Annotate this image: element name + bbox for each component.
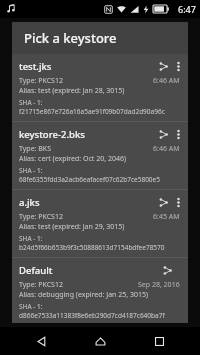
button[interactable]: a.jks: [12, 190, 188, 257]
button[interactable]: More options: [172, 59, 184, 74]
staticText: SHA - 1:: [19, 234, 43, 243]
staticText: d866e7533a11383f8e6eb290d7cd4187c640ba7f: [19, 311, 165, 318]
staticText: Pick a keystore: [24, 29, 117, 47]
staticText: 6:46 AM: [153, 76, 180, 86]
staticText: Type: PKCS12: [19, 212, 153, 222]
staticText: Alias: debugging (expired: Jan 25, 3015): [19, 290, 149, 300]
button[interactable]: Recent apps: [141, 327, 177, 355]
staticText: SHA - 1:: [19, 98, 43, 107]
staticText: Type: PKCS12: [19, 76, 153, 86]
staticText: Sep 28, 2016: [138, 280, 180, 290]
button[interactable]: More options: [172, 195, 184, 210]
staticText: test.jks: [19, 60, 154, 73]
staticText: Default: [19, 264, 158, 277]
staticText: 68fe6355fdd3a2acb6eafacef07c62b7ce5800e5: [19, 175, 160, 184]
button[interactable]: Back: [23, 327, 59, 355]
staticText: keystore-2.bks: [19, 128, 154, 141]
button[interactable]: Share: [154, 195, 172, 210]
button[interactable]: test.jks: [12, 54, 188, 121]
staticText: Alias: test (expired: Jan 28, 3015): [19, 86, 125, 96]
staticText: SHA - 1:: [19, 302, 43, 311]
button[interactable]: More options: [172, 127, 184, 142]
staticText: Type: BKS: [19, 144, 153, 154]
button[interactable]: Home: [82, 327, 118, 355]
staticText: b24d5f66b653b9f3c50888613d7154bdfee78570: [19, 243, 165, 252]
staticText: 6:47: [178, 3, 196, 15]
staticText: SHA - 1:: [19, 166, 43, 175]
button[interactable]: keystore-2.bks: [12, 122, 188, 189]
staticText: a.jks: [19, 196, 154, 209]
button[interactable]: Default: [12, 258, 188, 323]
button[interactable]: Share: [158, 263, 176, 278]
staticText: Alias: test (expired: Jan 29, 3015): [19, 222, 125, 232]
staticText: 6:46 AM: [153, 144, 180, 154]
button[interactable]: Share: [154, 59, 172, 74]
button[interactable]: Share: [154, 127, 172, 142]
staticText: f21715e867e726a16a5ae91f09b07dad2d90a96c: [19, 107, 165, 116]
staticText: Type: PKCS12: [19, 280, 138, 290]
staticText: 6:45 AM: [153, 212, 180, 222]
staticText: Alias: cert (expired: Oct 20, 2046): [19, 154, 127, 164]
